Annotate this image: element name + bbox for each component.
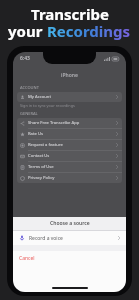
staticText: Privacy Policy (28, 175, 55, 181)
staticText: Sign in to sync your recordings (20, 103, 75, 108)
button[interactable]: Privacy Policy (17, 173, 122, 183)
staticText: Cancel (19, 255, 35, 262)
staticText: Terms of Use (28, 164, 54, 170)
button[interactable]: My Account (17, 92, 122, 102)
staticText: Contact Us (28, 153, 50, 159)
staticText: Transcribe (31, 4, 109, 24)
staticText: GENERAL (20, 111, 38, 116)
button[interactable]: Rate Us (17, 129, 122, 139)
staticText: 6:43 (20, 55, 30, 62)
staticText: Choose a source (50, 220, 90, 227)
staticText: ACCOUNT (20, 85, 39, 90)
staticText: Request a feature (28, 142, 63, 148)
staticText: Share Free Transcribe App (28, 120, 80, 126)
staticText: iPhone (61, 72, 78, 79)
button[interactable]: Record a voice (13, 231, 126, 245)
button[interactable]: Request a feature (17, 140, 122, 150)
button[interactable]: Contact Us (17, 151, 122, 161)
button[interactable]: Terms of Use (17, 162, 122, 172)
staticText: Record a voice (29, 235, 63, 242)
staticText: Rate Us (28, 131, 43, 137)
staticText: Recordings (47, 21, 131, 41)
staticText: your (8, 21, 47, 41)
button[interactable]: Share Free Transcribe App (17, 118, 122, 128)
staticText: My Account (28, 94, 51, 100)
button[interactable]: Cancel (13, 251, 126, 265)
